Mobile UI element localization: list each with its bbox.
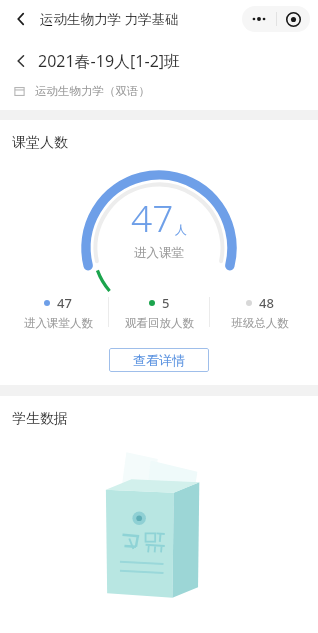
button[interactable]: 5 — [109, 294, 209, 330]
button[interactable]: Close — [277, 6, 310, 32]
button[interactable]: 查看详情 — [109, 348, 209, 372]
staticText: 班级总人数 — [231, 316, 289, 330]
staticText: 查看详情 — [133, 352, 185, 368]
button[interactable]: More — [242, 6, 276, 32]
button[interactable]: Back to class list — [12, 52, 30, 70]
staticText: 运动生物力学 力学基础 — [40, 10, 179, 28]
staticText: 人 — [175, 222, 187, 237]
staticText: 47 — [131, 192, 174, 242]
staticText: 5 — [162, 294, 170, 312]
staticText: 进入课堂人数 — [24, 316, 93, 330]
staticText: 运动生物力学（双语） — [35, 84, 150, 98]
button[interactable]: 48 — [210, 294, 310, 330]
staticText: 课堂人数 — [12, 134, 68, 152]
button[interactable]: Back — [10, 8, 32, 30]
staticText: 观看回放人数 — [125, 316, 194, 330]
staticText: 2021春-19人[1-2]班 — [38, 50, 181, 72]
staticText: 学生数据 — [12, 410, 68, 428]
button[interactable]: 47 — [8, 294, 108, 330]
staticText: 进入课堂 — [134, 245, 184, 261]
staticText: 48 — [259, 294, 274, 312]
staticText: 47 — [57, 294, 72, 312]
